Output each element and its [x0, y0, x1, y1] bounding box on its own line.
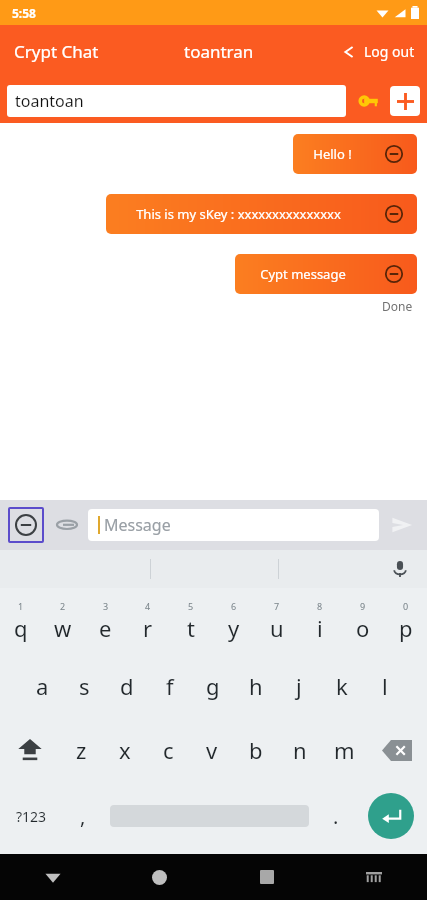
- button[interactable]: Decrypt message: [371, 254, 417, 294]
- button[interactable]: 1: [0, 588, 42, 654]
- staticText: j: [296, 671, 302, 701]
- staticText: n: [293, 735, 307, 765]
- button[interactable]: h: [234, 654, 277, 718]
- staticText: .: [333, 803, 339, 830]
- button[interactable]: z: [60, 718, 103, 782]
- button[interactable]: 3: [84, 588, 126, 654]
- staticText: Log out: [364, 42, 415, 61]
- staticText: m: [334, 735, 355, 765]
- staticText: 8: [317, 600, 323, 612]
- staticText: h: [249, 671, 263, 701]
- staticText: 1: [18, 600, 24, 612]
- staticText: g: [206, 671, 220, 701]
- button[interactable]: 8: [298, 588, 341, 654]
- staticText: t: [187, 613, 195, 643]
- staticText: d: [120, 671, 134, 701]
- staticText: This is my sKey : xxxxxxxxxxxxxxx: [136, 205, 341, 223]
- button[interactable]: Voice input: [387, 556, 413, 582]
- button[interactable]: Attach file: [54, 512, 80, 538]
- staticText: 4: [145, 600, 151, 612]
- staticText: b: [249, 735, 263, 765]
- staticText: c: [163, 735, 174, 765]
- button[interactable]: 7: [255, 588, 298, 654]
- button[interactable]: k: [320, 654, 363, 718]
- staticText: w: [54, 613, 72, 643]
- staticText: Cypt message: [260, 265, 346, 283]
- staticText: l: [382, 671, 388, 701]
- button[interactable]: Shift: [0, 718, 60, 782]
- staticText: a: [36, 671, 49, 701]
- button[interactable]: d: [105, 654, 148, 718]
- staticText: p: [399, 613, 413, 643]
- staticText: k: [336, 671, 348, 701]
- button[interactable]: x: [103, 718, 146, 782]
- staticText: Hello !: [313, 145, 352, 163]
- staticText: r: [143, 613, 153, 643]
- staticText: f: [166, 671, 174, 701]
- button[interactable]: Secret key: [354, 86, 384, 116]
- button[interactable]: Enter: [355, 782, 427, 850]
- staticText: toantoan: [15, 90, 84, 112]
- staticText: ?123: [16, 807, 47, 826]
- button[interactable]: .: [316, 782, 355, 850]
- button[interactable]: v: [190, 718, 234, 782]
- staticText: Message: [104, 514, 171, 536]
- staticText: v: [206, 735, 218, 765]
- staticText: 5: [188, 600, 194, 612]
- button[interactable]: j: [277, 654, 320, 718]
- button[interactable]: ,: [63, 782, 102, 850]
- staticText: u: [270, 613, 284, 643]
- staticText: 0: [403, 600, 409, 612]
- staticText: 9: [360, 600, 366, 612]
- staticText: e: [99, 613, 112, 643]
- button[interactable]: f: [148, 654, 191, 718]
- button[interactable]: Add contact: [390, 86, 420, 116]
- button[interactable]: 2: [42, 588, 84, 654]
- button[interactable]: l: [363, 654, 406, 718]
- button[interactable]: Recent apps: [213, 854, 320, 900]
- button[interactable]: Home: [106, 854, 213, 900]
- staticText: z: [76, 735, 87, 765]
- button[interactable]: s: [63, 654, 105, 718]
- button[interactable]: Back: [0, 854, 106, 900]
- button[interactable]: c: [146, 718, 190, 782]
- button[interactable]: Backspace: [366, 718, 427, 782]
- staticText: x: [119, 735, 131, 765]
- staticText: 5:58: [12, 5, 36, 21]
- button[interactable]: Message: [88, 509, 379, 541]
- staticText: o: [356, 613, 370, 643]
- button[interactable]: Decrypt message: [371, 194, 417, 234]
- button[interactable]: Hello !: [293, 134, 417, 174]
- staticText: ,: [80, 803, 86, 830]
- button[interactable]: Switch keyboard: [320, 854, 427, 900]
- button[interactable]: 9: [341, 588, 384, 654]
- button[interactable]: b: [234, 718, 278, 782]
- button[interactable]: Log out: [340, 42, 415, 61]
- button[interactable]: ?123: [0, 782, 63, 850]
- staticText: 7: [274, 600, 280, 612]
- button[interactable]: 5: [169, 588, 212, 654]
- staticText: toantran: [184, 40, 254, 63]
- staticText: Done: [382, 298, 413, 314]
- button[interactable]: Send: [385, 508, 419, 542]
- staticText: 2: [60, 600, 66, 612]
- button[interactable]: Decrypt message: [371, 134, 417, 174]
- button[interactable]: 6: [212, 588, 255, 654]
- button[interactable]: Space: [102, 782, 316, 850]
- button[interactable]: g: [191, 654, 234, 718]
- staticText: 6: [231, 600, 237, 612]
- button[interactable]: 0: [384, 588, 427, 654]
- staticText: 3: [103, 600, 109, 612]
- button[interactable]: a: [21, 654, 63, 718]
- button[interactable]: 4: [126, 588, 169, 654]
- staticText: q: [14, 613, 28, 643]
- button[interactable]: Cypt message: [235, 254, 417, 294]
- button[interactable]: Encryption toggle: [8, 507, 44, 543]
- button[interactable]: n: [278, 718, 322, 782]
- staticText: s: [79, 671, 90, 701]
- button[interactable]: m: [322, 718, 366, 782]
- button[interactable]: This is my sKey : xxxxxxxxxxxxxxx: [106, 194, 417, 234]
- staticText: i: [317, 613, 323, 643]
- button[interactable]: toantoan: [7, 85, 346, 117]
- button[interactable]: Crypt Chat: [14, 40, 99, 63]
